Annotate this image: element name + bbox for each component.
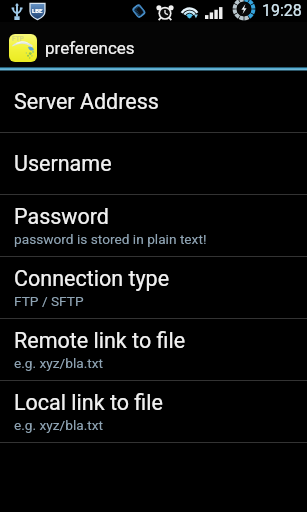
- staticText: FTP / SFTP: [14, 293, 84, 309]
- button[interactable]: Local link to file: [0, 381, 307, 443]
- staticText: Server Address: [14, 89, 159, 114]
- button[interactable]: Connection type: [0, 257, 307, 319]
- button[interactable]: Password: [0, 195, 307, 257]
- staticText: e.g. xyz/bla.txt: [14, 355, 104, 371]
- button[interactable]: FTP: [0, 22, 307, 67]
- button[interactable]: Remote link to file: [0, 319, 307, 381]
- staticText: FTP: [12, 35, 24, 43]
- other: USB connected: [11, 3, 23, 20]
- other: Sync active: [132, 4, 146, 18]
- button[interactable]: Username: [0, 133, 307, 195]
- staticText: LBE: [32, 7, 43, 14]
- staticText: Remote link to file: [14, 328, 186, 353]
- other: LBE Security: [29, 2, 46, 20]
- staticText: 19:28: [262, 1, 302, 20]
- staticText: Connection type: [14, 266, 170, 291]
- other: Alarm set: [157, 4, 173, 20]
- button[interactable]: Server Address: [0, 71, 307, 133]
- staticText: preferences: [45, 38, 135, 58]
- other: Wi-Fi connected: [180, 5, 199, 19]
- staticText: Local link to file: [14, 390, 163, 415]
- staticText: e.g. xyz/bla.txt: [14, 417, 104, 433]
- staticText: Password: [14, 204, 109, 229]
- other: Mobile signal: [205, 6, 223, 19]
- staticText: Username: [14, 151, 112, 176]
- other: Battery charging: [231, 0, 257, 20]
- staticText: password is stored in plain text!: [14, 231, 207, 247]
